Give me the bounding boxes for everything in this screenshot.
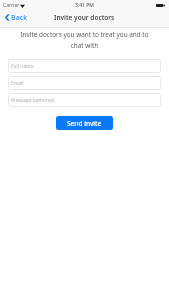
staticText: Email xyxy=(11,80,24,87)
staticText: Message (optional) xyxy=(11,97,55,104)
staticText: Back xyxy=(11,12,27,22)
staticText: 3:41 PM xyxy=(75,2,94,9)
staticText: Carrier xyxy=(3,2,20,9)
staticText: Send invite xyxy=(67,119,102,128)
button[interactable]: Back xyxy=(0,12,31,22)
button[interactable]: Send invite xyxy=(56,116,113,130)
button[interactable]: Full name xyxy=(8,59,161,73)
staticText: Invite your doctors xyxy=(54,13,115,22)
button[interactable]: Message (optional) xyxy=(8,93,161,107)
button[interactable]: Email xyxy=(8,76,161,90)
staticText: Full name xyxy=(11,63,34,70)
staticText: Invite doctors you want to treat you and… xyxy=(17,30,152,50)
